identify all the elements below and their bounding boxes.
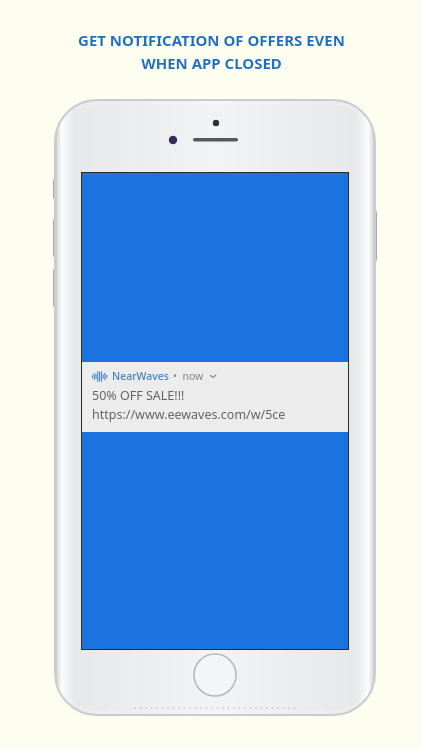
staticText: NearWaves [112, 369, 169, 383]
staticText: • now [173, 369, 204, 383]
staticText: https://www.eewaves.com/w/5ce [92, 406, 286, 423]
staticText: WHEN APP CLOSED [141, 53, 282, 73]
staticText: 50% OFF SALE!!! [92, 387, 185, 404]
button[interactable]: NearWaves [82, 362, 348, 432]
other: Home [192, 652, 238, 698]
button[interactable]: Expand notification [209, 372, 217, 380]
staticText: GET NOTIFICATION OF OFFERS EVEN [78, 30, 345, 50]
